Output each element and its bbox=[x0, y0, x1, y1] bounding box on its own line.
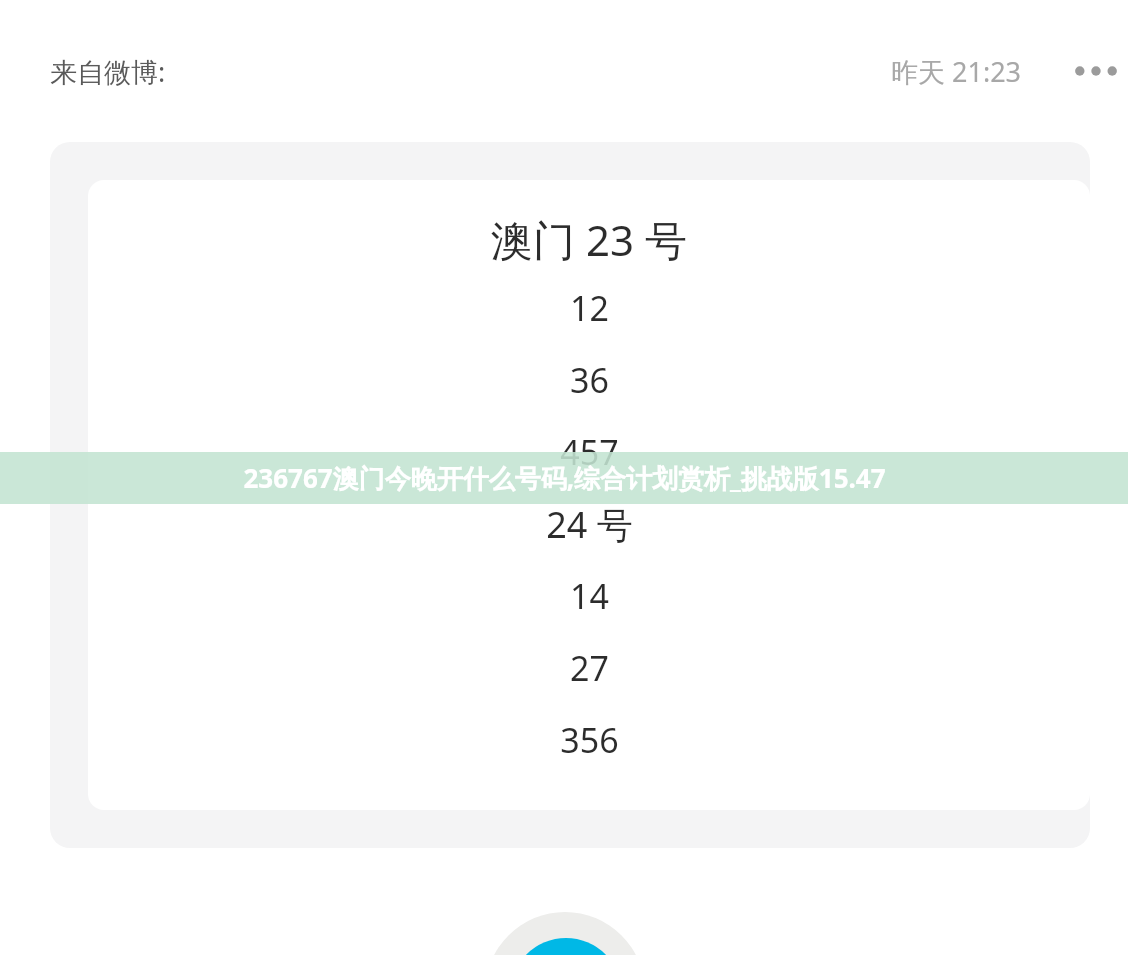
button[interactable]: 澳门 23 号 bbox=[50, 142, 1090, 848]
staticText: 昨天 21:23 bbox=[891, 53, 1022, 90]
staticText: 来自微博: bbox=[50, 53, 166, 90]
button[interactable]: More options bbox=[1068, 43, 1124, 99]
staticText: 27 bbox=[570, 645, 609, 691]
staticText: 14 bbox=[570, 573, 609, 619]
staticText: 457 bbox=[560, 429, 619, 475]
staticText: 36 bbox=[570, 357, 609, 403]
staticText: 24 号 bbox=[546, 500, 633, 549]
staticText: 356 bbox=[560, 717, 619, 763]
button[interactable]: 来自微博: bbox=[50, 53, 166, 90]
staticText: 澳门 23 号 bbox=[491, 211, 687, 268]
staticText: 236767澳门今晚开什么号码,综合计划赏析_挑战版15.47 bbox=[243, 460, 886, 496]
staticText: 12 bbox=[570, 285, 609, 331]
